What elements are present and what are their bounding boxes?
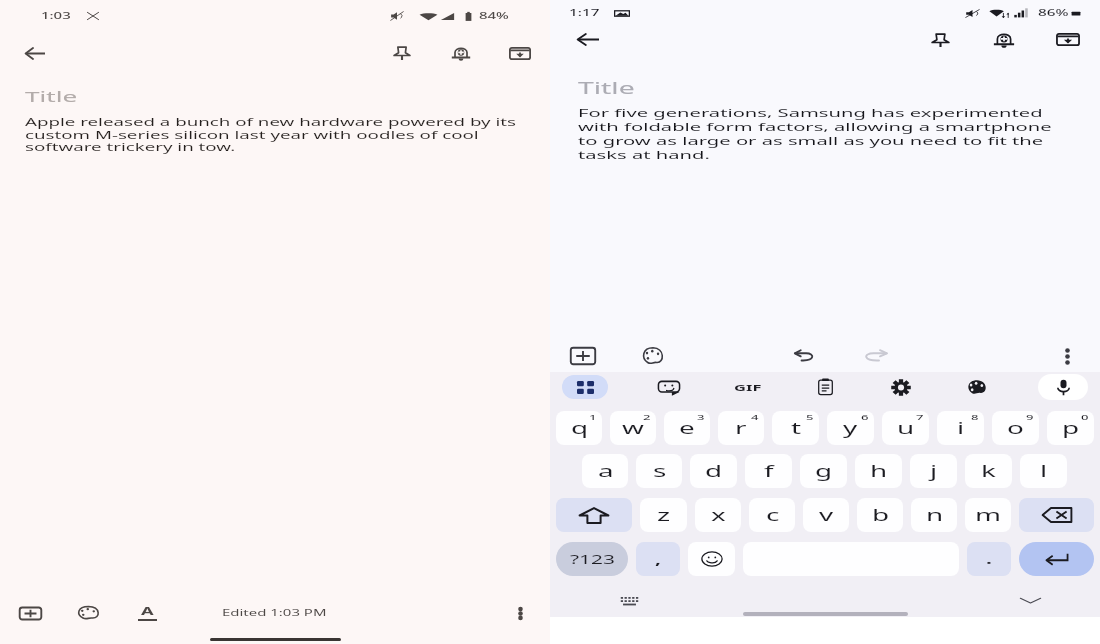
staticText: r	[735, 417, 747, 439]
staticText: 8	[971, 412, 980, 422]
staticText: 2	[643, 412, 652, 422]
button[interactable]: Change keyboard	[617, 589, 641, 613]
button[interactable]: g	[800, 454, 847, 488]
button[interactable]: z	[640, 498, 687, 532]
button[interactable]: Reminder	[444, 36, 478, 70]
button[interactable]: Backspace	[1019, 498, 1094, 532]
button[interactable]: Add	[13, 596, 47, 630]
button[interactable]: w	[610, 411, 656, 445]
staticText: t	[791, 417, 801, 439]
button[interactable]: Back	[17, 36, 52, 71]
staticText: j	[930, 460, 939, 482]
button[interactable]: Redo	[858, 339, 892, 372]
button[interactable]: Clipboard	[810, 372, 840, 402]
button[interactable]: d	[690, 454, 737, 488]
staticText: 0	[1081, 412, 1090, 422]
button[interactable]: a	[582, 454, 628, 488]
staticText: Title	[25, 86, 77, 106]
staticText: v	[819, 504, 835, 526]
button[interactable]: More options	[506, 599, 534, 627]
button[interactable]: p	[1047, 411, 1094, 445]
button[interactable]: t	[772, 411, 819, 445]
staticText: m	[975, 504, 1001, 526]
button[interactable]: c	[749, 498, 795, 532]
button[interactable]: Shift	[556, 498, 632, 532]
staticText: 6	[861, 412, 870, 422]
staticText: s	[653, 460, 667, 482]
button[interactable]: More options	[1054, 343, 1080, 369]
button[interactable]: Palette	[636, 339, 670, 372]
staticText: h	[870, 460, 887, 482]
button[interactable]: ,	[636, 542, 680, 576]
staticText: Title	[578, 77, 635, 99]
staticText: x	[711, 504, 727, 526]
staticText: Edited 1:03 PM	[222, 607, 328, 619]
button[interactable]: Themes	[962, 372, 992, 402]
button[interactable]: l	[1020, 454, 1067, 488]
button[interactable]: Archive	[1051, 25, 1085, 54]
button[interactable]: Archive	[503, 36, 537, 70]
button[interactable]: Emoji	[688, 542, 735, 576]
staticText: 1	[589, 412, 598, 422]
staticText: c	[766, 504, 780, 526]
button[interactable]: i	[937, 411, 984, 445]
button[interactable]: Add	[566, 339, 600, 372]
staticText: d	[705, 460, 722, 482]
staticText: y	[843, 417, 859, 439]
button[interactable]: s	[636, 454, 682, 488]
staticText: k	[981, 460, 997, 482]
staticText: n	[926, 504, 943, 526]
button[interactable]: q	[556, 411, 602, 445]
button[interactable]: Enter	[1019, 542, 1094, 576]
staticText: e	[679, 417, 696, 439]
button[interactable]: f	[745, 454, 792, 488]
button[interactable]: y	[827, 411, 874, 445]
staticText: ?123	[570, 551, 615, 567]
staticText: o	[1007, 417, 1024, 439]
staticText: 9	[1026, 412, 1035, 422]
button[interactable]: ?123	[556, 542, 628, 576]
button[interactable]: h	[855, 454, 902, 488]
button[interactable]: n	[911, 498, 957, 532]
button[interactable]: .	[967, 542, 1011, 576]
button[interactable]: j	[910, 454, 957, 488]
staticText: .	[986, 551, 993, 567]
button[interactable]: r	[718, 411, 764, 445]
button[interactable]: v	[803, 498, 849, 532]
button[interactable]: GIF	[730, 378, 765, 397]
staticText: f	[764, 460, 774, 482]
button[interactable]: Settings	[886, 372, 916, 402]
staticText: 84%	[479, 10, 510, 22]
button[interactable]: m	[965, 498, 1011, 532]
button[interactable]: Palette	[71, 596, 105, 630]
staticText: Apple released a bunch of new hardware p…	[25, 115, 531, 154]
button[interactable]: Pin	[923, 25, 957, 54]
button[interactable]: Undo	[787, 339, 821, 372]
button[interactable]: Stickers	[654, 372, 684, 402]
button[interactable]: u	[882, 411, 929, 445]
button[interactable]: x	[695, 498, 741, 532]
button[interactable]: e	[664, 411, 710, 445]
staticText: u	[897, 417, 914, 439]
button[interactable]: Voice input	[1038, 374, 1088, 400]
button[interactable]: Back	[570, 25, 605, 54]
button[interactable]: Text format	[130, 596, 164, 630]
button[interactable]: k	[965, 454, 1012, 488]
staticText: For five generations, Samsung has experi…	[578, 105, 1062, 162]
staticText: 86%	[1038, 7, 1069, 19]
staticText: 7	[916, 412, 925, 422]
staticText: 3	[697, 412, 706, 422]
staticText: 1:03	[41, 10, 72, 22]
staticText: q	[571, 417, 588, 439]
button[interactable]: Hide keyboard	[1018, 588, 1042, 612]
button[interactable]: o	[992, 411, 1039, 445]
staticText: l	[1040, 460, 1049, 482]
button[interactable]: Pin	[385, 36, 419, 70]
button[interactable]: b	[857, 498, 903, 532]
staticText: p	[1062, 417, 1079, 439]
staticText: 4	[751, 412, 760, 422]
staticText: i	[957, 417, 966, 439]
button[interactable]: Reminder	[987, 25, 1021, 54]
button[interactable]: Keyboard modes	[562, 375, 608, 399]
